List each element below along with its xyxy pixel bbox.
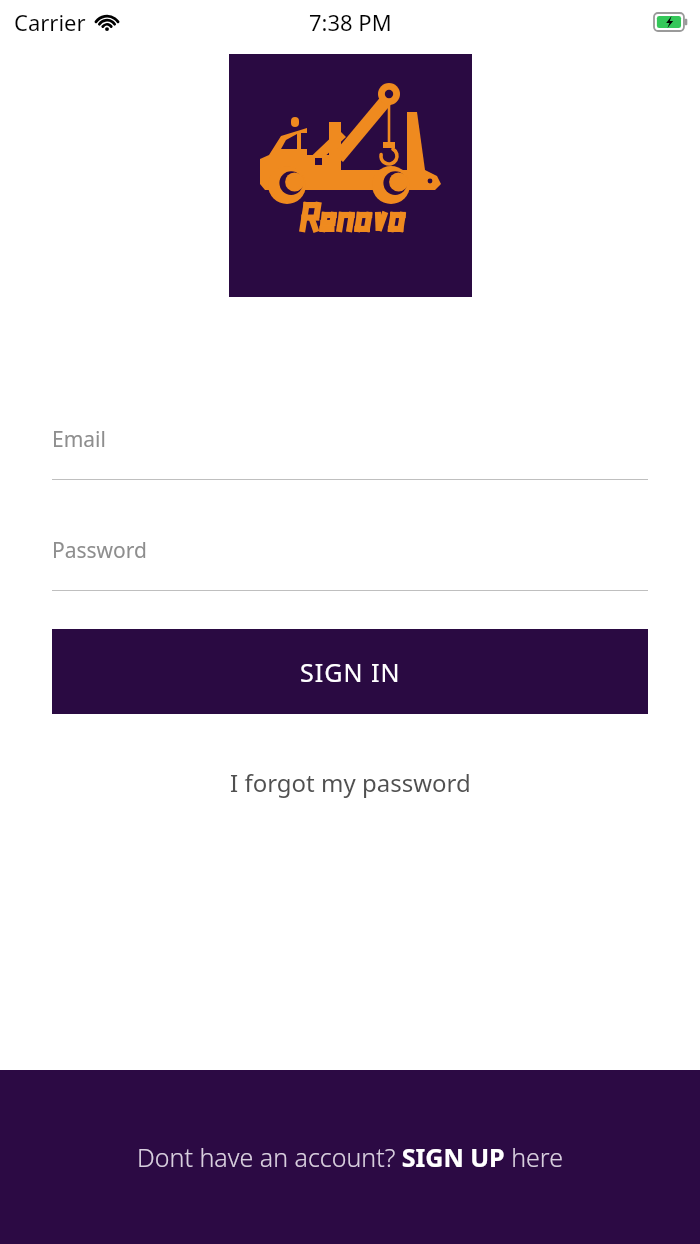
button[interactable]: Password [52,536,648,591]
staticText: Email [52,425,106,454]
staticText: Password [52,536,147,565]
button[interactable]: SIGN IN [52,629,648,714]
staticText: I forgot my password [230,766,471,799]
button[interactable]: Email [52,425,648,480]
button[interactable]: I forgot my password [0,766,700,799]
staticText: Dont have an account? SIGN UP here [137,1140,563,1174]
staticText: 7:38 PM [309,7,392,37]
staticText: Carrier [14,7,86,37]
button[interactable]: Dont have an account? SIGN UP here [0,1070,700,1244]
staticText: SIGN IN [300,655,401,689]
